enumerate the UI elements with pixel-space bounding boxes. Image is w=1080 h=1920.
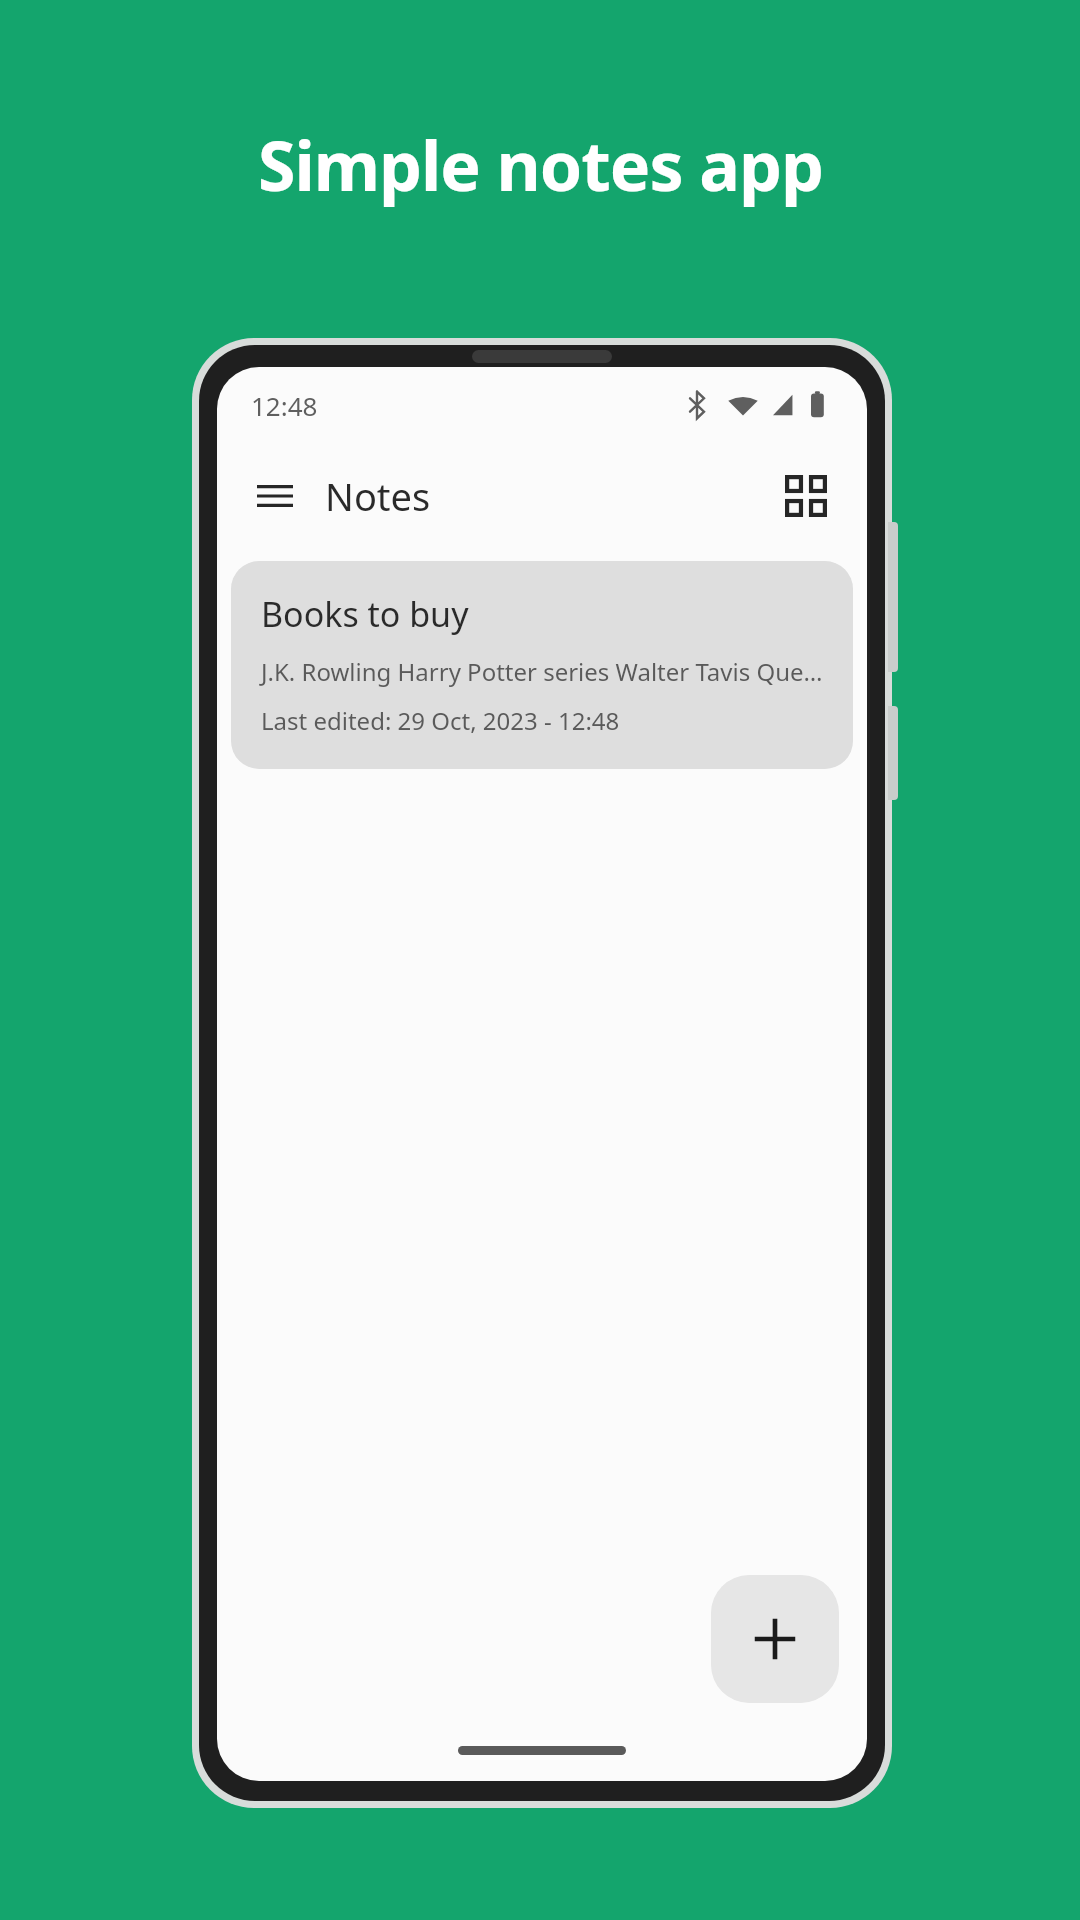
staticText: 12:48 bbox=[251, 388, 318, 423]
button[interactable]: Open navigation menu bbox=[243, 464, 307, 528]
staticText: Books to buy bbox=[261, 591, 469, 637]
button[interactable]: Switch to grid view bbox=[771, 461, 841, 531]
staticText: Notes bbox=[325, 470, 431, 522]
button[interactable]: Add note bbox=[711, 1575, 839, 1703]
staticText: Last edited: 29 Oct, 2023 - 12:48 bbox=[261, 704, 620, 737]
staticText: Simple notes app bbox=[258, 118, 823, 211]
button[interactable]: Books to buy bbox=[231, 561, 853, 769]
staticText: J.K. Rowling Harry Potter series Walter … bbox=[261, 655, 827, 688]
